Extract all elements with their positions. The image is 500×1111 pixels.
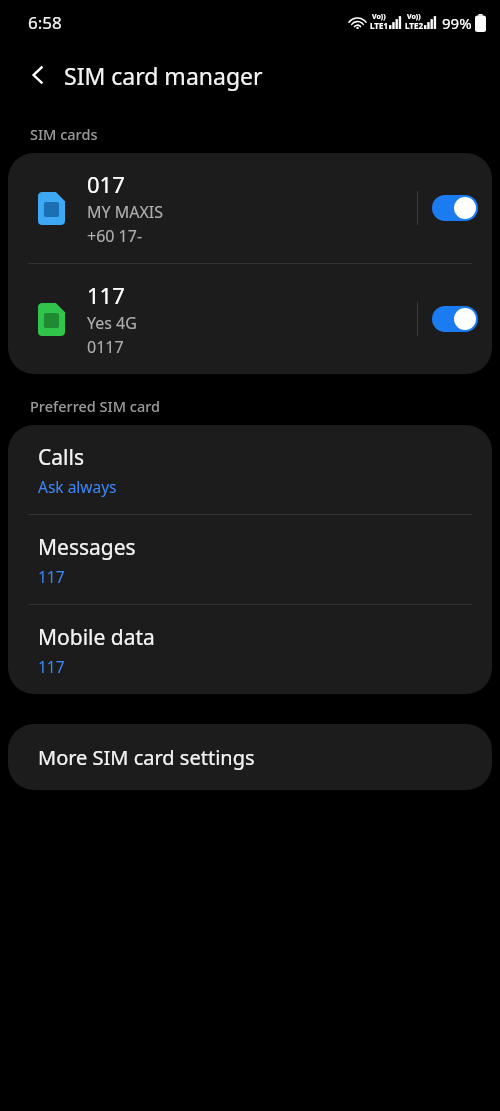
staticText: 017 [87, 169, 125, 199]
staticText: 0117 [87, 336, 124, 358]
staticText: SIM card manager [64, 60, 263, 91]
staticText: LTE1 [370, 20, 388, 31]
staticText: 117 [87, 280, 125, 310]
staticText: 117 [38, 656, 65, 677]
staticText: LTE2 [405, 20, 423, 31]
staticText: MY MAXIS [87, 201, 164, 223]
staticText: Calls [38, 443, 84, 472]
staticText: Vo)) [372, 12, 386, 22]
staticText: 6:58 [28, 11, 62, 34]
staticText: More SIM card settings [38, 744, 255, 771]
staticText: SIM cards [30, 124, 500, 144]
staticText: +60 17- [87, 225, 143, 247]
staticText: 99% [442, 13, 472, 33]
button[interactable]: More SIM card settings [8, 724, 492, 790]
button[interactable]: Calls [8, 425, 492, 514]
button[interactable]: 117 [8, 264, 492, 374]
button[interactable]: Messages [8, 515, 492, 604]
button[interactable]: 017 [8, 153, 492, 263]
staticText: Preferred SIM card [30, 396, 500, 416]
staticText: Vo)) [407, 12, 421, 22]
staticText: Yes 4G [87, 312, 137, 334]
button[interactable]: Toggle SIM 1 [432, 195, 478, 221]
staticText: Mobile data [38, 623, 155, 652]
staticText: Messages [38, 533, 136, 562]
staticText: Ask always [38, 476, 117, 497]
button[interactable]: Toggle SIM 2 [432, 306, 478, 332]
button[interactable]: Mobile data [8, 605, 492, 694]
button[interactable]: Back [16, 53, 60, 97]
staticText: 117 [38, 566, 65, 587]
